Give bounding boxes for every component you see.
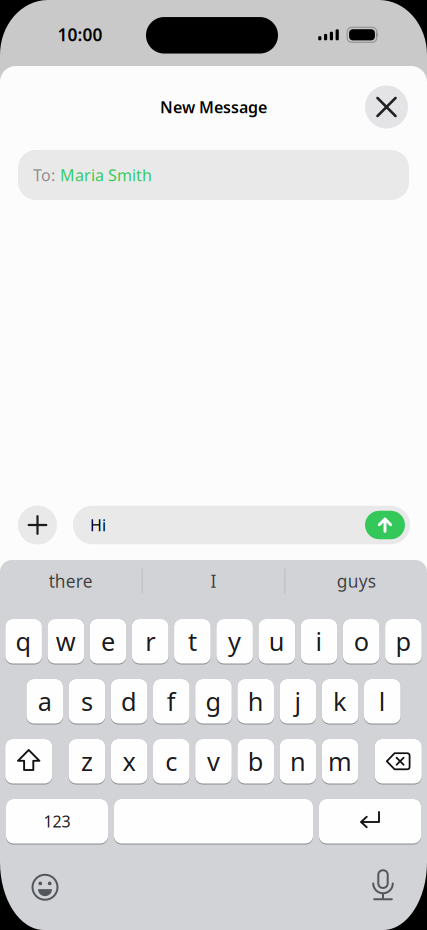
button[interactable] <box>114 799 313 844</box>
staticText: m <box>328 744 352 778</box>
button[interactable]: x <box>111 739 147 784</box>
staticText: f <box>167 684 176 718</box>
button[interactable]: c <box>153 739 190 784</box>
button[interactable]: u <box>258 619 295 664</box>
button[interactable]: t <box>174 619 211 664</box>
staticText: guys <box>337 569 376 592</box>
staticText: a <box>38 684 52 718</box>
staticText: s <box>81 684 93 718</box>
button[interactable]: h <box>237 679 274 724</box>
button[interactable]: n <box>280 739 316 784</box>
button[interactable]: i <box>301 619 337 664</box>
button[interactable] <box>18 505 57 544</box>
button[interactable]: there <box>0 560 142 602</box>
button[interactable]: a <box>26 679 63 724</box>
button[interactable]: r <box>132 619 168 664</box>
button[interactable] <box>375 739 422 784</box>
button[interactable] <box>365 511 405 539</box>
staticText: p <box>395 624 411 658</box>
button[interactable]: m <box>322 739 358 784</box>
staticText: v <box>207 744 220 778</box>
staticText: Maria Smith <box>60 164 152 186</box>
staticText: h <box>248 684 264 718</box>
staticText: b <box>248 744 264 778</box>
button[interactable]: I <box>143 560 284 602</box>
button[interactable]: b <box>237 739 274 784</box>
staticText: u <box>269 624 285 658</box>
staticText: r <box>145 624 155 658</box>
button[interactable]: j <box>280 679 316 724</box>
staticText: i <box>315 624 322 658</box>
button[interactable]: g <box>195 679 232 724</box>
staticText: New Message <box>160 96 267 118</box>
button[interactable]: d <box>111 679 147 724</box>
button[interactable]: z <box>69 739 105 784</box>
button[interactable]: v <box>195 739 232 784</box>
staticText: g <box>205 684 221 718</box>
staticText: e <box>101 624 115 658</box>
button[interactable]: e <box>90 619 126 664</box>
staticText: z <box>81 744 93 778</box>
button[interactable] <box>370 867 396 907</box>
staticText: there <box>49 569 93 592</box>
staticText: y <box>228 624 241 658</box>
staticText: d <box>121 684 137 718</box>
button[interactable]: p <box>385 619 422 664</box>
staticText: I <box>210 569 216 592</box>
button[interactable]: w <box>47 619 84 664</box>
button[interactable]: k <box>322 679 358 724</box>
button[interactable]: guys <box>285 560 427 602</box>
button[interactable] <box>30 872 60 902</box>
staticText: Hi <box>90 514 106 536</box>
button[interactable]: s <box>69 679 105 724</box>
button[interactable] <box>319 799 421 844</box>
staticText: To: <box>33 164 55 186</box>
staticText: 123 <box>43 811 70 832</box>
staticText: l <box>379 684 386 718</box>
staticText: c <box>165 744 177 778</box>
staticText: o <box>354 624 369 658</box>
staticText: j <box>294 684 301 718</box>
button[interactable]: l <box>364 679 401 724</box>
staticText: k <box>333 684 347 718</box>
staticText: n <box>290 744 306 778</box>
button[interactable]: f <box>153 679 190 724</box>
staticText: t <box>188 624 197 658</box>
button[interactable] <box>5 739 52 784</box>
button[interactable] <box>365 85 408 128</box>
button[interactable]: 123 <box>6 799 108 844</box>
staticText: q <box>16 624 32 658</box>
staticText: x <box>123 744 136 778</box>
button[interactable]: y <box>216 619 253 664</box>
button[interactable]: o <box>343 619 379 664</box>
staticText: 10:00 <box>57 23 102 46</box>
staticText: w <box>56 624 76 658</box>
button[interactable]: To: <box>18 150 409 200</box>
button[interactable]: q <box>5 619 42 664</box>
